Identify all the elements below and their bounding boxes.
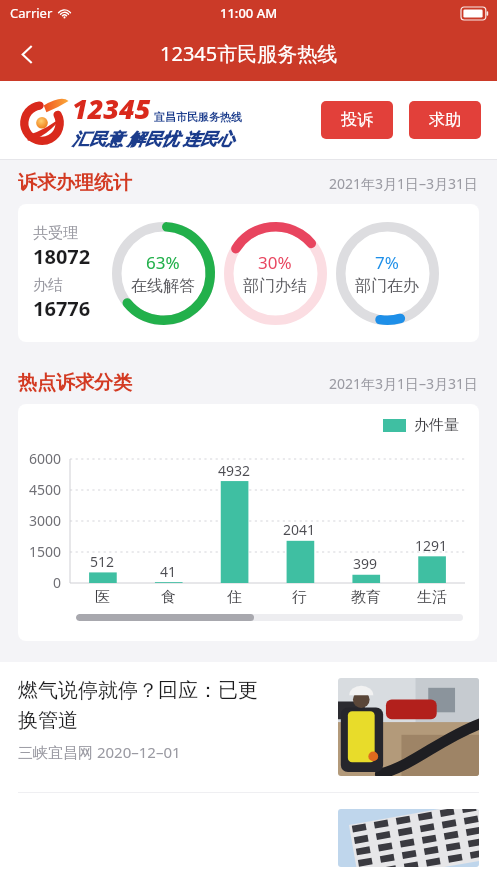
staticText: 住 bbox=[227, 588, 242, 607]
staticText: 2041 bbox=[283, 520, 316, 539]
staticText: 燃气说停就停？回应：已更 换管道 bbox=[18, 678, 258, 733]
staticText: 共受理 bbox=[33, 224, 78, 243]
staticText: 4500 bbox=[29, 480, 62, 499]
staticText: 医 bbox=[95, 588, 110, 607]
staticText: 食 bbox=[161, 588, 176, 607]
staticText: 399 bbox=[353, 554, 378, 573]
staticText: 求助 bbox=[429, 110, 461, 130]
staticText: 12345 bbox=[72, 90, 151, 127]
staticText: 6000 bbox=[29, 449, 62, 468]
staticText: 三峡宜昌网 2020–12–01 bbox=[18, 742, 181, 762]
button[interactable]: Back bbox=[4, 31, 50, 77]
staticText: 11:00 AM bbox=[220, 4, 278, 22]
staticText: 投诉 bbox=[341, 110, 373, 130]
staticText: 41 bbox=[160, 562, 177, 581]
staticText: 1500 bbox=[29, 542, 62, 561]
staticText: 部门办结 bbox=[243, 276, 307, 296]
staticText: 30% bbox=[258, 251, 292, 274]
staticText: 办结 bbox=[33, 276, 63, 295]
staticText: 宜昌市民服务热线 bbox=[154, 110, 242, 124]
staticText: 512 bbox=[90, 552, 115, 571]
staticText: 生活 bbox=[417, 588, 447, 607]
staticText: 热点诉求分类 bbox=[18, 371, 132, 395]
staticText: 办件量 bbox=[414, 416, 459, 435]
staticText: 16776 bbox=[33, 295, 91, 322]
button[interactable]: 共受理 bbox=[18, 204, 479, 342]
staticText: 教育 bbox=[351, 588, 381, 607]
staticText: 63% bbox=[146, 251, 180, 274]
staticText: 4932 bbox=[218, 461, 251, 480]
staticText: 0 bbox=[53, 573, 62, 592]
staticText: 汇民意 解民忧 连民心 bbox=[72, 127, 234, 150]
staticText: 在线解答 bbox=[131, 276, 195, 296]
staticText: 行 bbox=[292, 588, 307, 607]
button[interactable]: 求助 bbox=[409, 101, 481, 139]
button[interactable]: 办件量 bbox=[18, 404, 479, 641]
button[interactable]: 燃气说停就停？回应：已更 换管道 bbox=[0, 662, 497, 792]
staticText: 2021年3月1日–3月31日 bbox=[329, 374, 479, 393]
button[interactable] bbox=[0, 793, 497, 883]
staticText: 部门在办 bbox=[355, 276, 419, 296]
button[interactable]: 投诉 bbox=[321, 101, 393, 139]
staticText: 18072 bbox=[33, 243, 91, 270]
staticText: 2021年3月1日–3月31日 bbox=[329, 174, 479, 193]
staticText: 12345市民服务热线 bbox=[160, 40, 338, 67]
staticText: 3000 bbox=[29, 511, 62, 530]
staticText: 1291 bbox=[415, 536, 448, 555]
staticText: Carrier bbox=[10, 4, 53, 22]
staticText: 诉求办理统计 bbox=[18, 171, 132, 195]
staticText: 7% bbox=[375, 251, 399, 274]
